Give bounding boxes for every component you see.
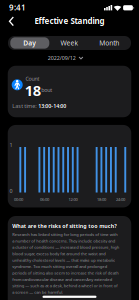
staticText: 13:00-14:00 — [38, 102, 66, 109]
button[interactable]: 2022/09/12 — [48, 54, 83, 62]
staticText: 18:00 — [97, 197, 106, 202]
staticText: 2022/09/12 — [48, 54, 76, 62]
staticText: bout — [41, 86, 52, 93]
staticText: 12:00 — [68, 197, 77, 202]
staticText: a cluster of conditions — increased bloo… — [12, 257, 139, 268]
staticText: Last time: — [12, 102, 36, 109]
button[interactable]: Month — [89, 36, 129, 49]
staticText: 24:00 — [116, 197, 125, 202]
staticText: 0 — [9, 187, 12, 195]
staticText: 06:00 — [40, 197, 49, 202]
staticText: syndrome. Too much sitting overall and p… — [12, 296, 139, 300]
button[interactable]: Day — [10, 37, 49, 49]
staticText: 9:41 — [9, 2, 26, 13]
staticText: Month — [99, 39, 119, 47]
staticText: unhealthy cholesterol levels — that make… — [12, 283, 139, 294]
staticText: a number of health concerns. They includ… — [12, 245, 139, 255]
staticText: Effective Standing — [34, 16, 104, 26]
staticText: Research has linked sitting for long per… — [12, 232, 139, 242]
staticText: 00:00 — [14, 197, 23, 202]
staticText: blood sugar, excess body fat around the … — [12, 270, 139, 281]
staticText: Count — [26, 75, 40, 82]
staticText: 1 — [9, 141, 12, 149]
button[interactable]: Week — [49, 36, 89, 49]
staticText: Day — [23, 39, 36, 47]
staticText: What are the risks of sitting too much? — [12, 222, 139, 236]
staticText: 18 — [25, 81, 41, 100]
button[interactable] — [9, 16, 15, 26]
staticText: Week — [60, 39, 78, 47]
